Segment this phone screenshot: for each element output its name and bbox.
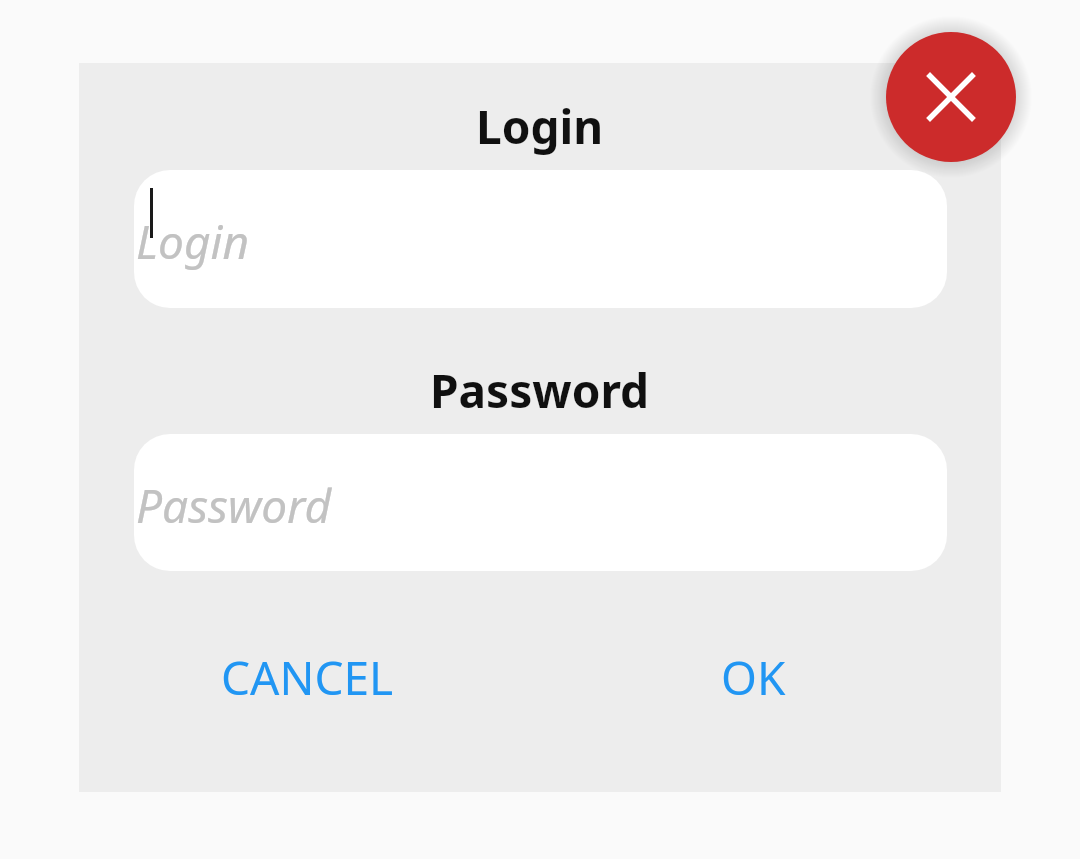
button[interactable]: Close: [886, 32, 1016, 162]
staticText: CANCEL: [221, 646, 394, 709]
button[interactable]: Login: [134, 170, 947, 308]
staticText: Password: [430, 359, 650, 422]
staticText: Login: [476, 95, 604, 158]
button[interactable]: CANCEL: [207, 629, 407, 725]
staticText: Login: [136, 210, 250, 273]
button[interactable]: Password: [134, 434, 947, 571]
staticText: OK: [721, 646, 786, 709]
button[interactable]: OK: [683, 629, 823, 725]
staticText: Password: [136, 474, 332, 537]
